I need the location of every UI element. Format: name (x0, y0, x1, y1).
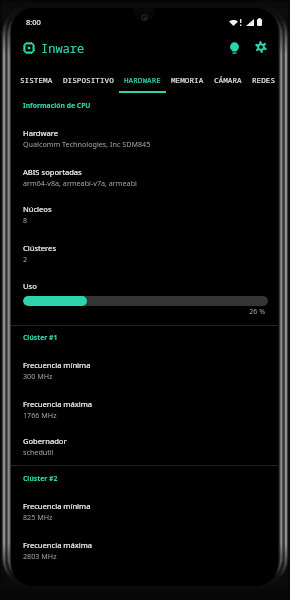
staticText: SISTEMA (20, 75, 53, 85)
staticText: 825 MHz (23, 512, 53, 522)
staticText: MEMORIA (171, 75, 204, 85)
staticText: Frecuencia mínima (23, 501, 91, 511)
staticText: CÁMARA (214, 75, 242, 85)
staticText: Clústeres (23, 243, 57, 253)
staticText: Qualcomm Technologies, Inc SDM845 (23, 139, 151, 149)
staticText: 2803 MHz (23, 551, 57, 561)
staticText: 2 (23, 254, 28, 264)
button[interactable]: Núcleos (23, 204, 266, 225)
staticText: Frecuencia máxima (23, 399, 93, 409)
staticText: ABIS soportadas (23, 167, 82, 177)
button[interactable]: REDES (247, 68, 278, 91)
button[interactable]: Toggle theme (220, 34, 248, 62)
button[interactable]: ABIS soportadas (23, 167, 266, 188)
button[interactable]: Frecuencia mínima (23, 501, 266, 522)
staticText: Uso (23, 281, 37, 291)
staticText: DISPOSITIVO (63, 75, 114, 85)
button[interactable]: Gobernador (23, 436, 266, 457)
staticText: REDES (252, 75, 276, 85)
staticText: 26 % (23, 307, 265, 317)
staticText: Clúster #2 (23, 474, 58, 483)
staticText: 1766 MHz (23, 410, 57, 420)
staticText: Inware (41, 40, 85, 56)
staticText: HARDWARE (124, 75, 161, 85)
staticText: 8 (23, 215, 28, 225)
staticText: 300 MHz (23, 371, 53, 381)
button[interactable]: SISTEMA (15, 68, 58, 91)
button[interactable]: Frecuencia máxima (23, 399, 266, 420)
button[interactable]: DISPOSITIVO (58, 68, 119, 91)
staticText: 8:00 (26, 17, 41, 27)
button[interactable]: HARDWARE (119, 68, 166, 93)
staticText: Clúster #1 (23, 333, 58, 342)
button[interactable]: Frecuencia mínima (23, 360, 266, 381)
button[interactable]: Settings (247, 33, 275, 61)
staticText: schedutil (23, 447, 54, 457)
staticText: Gobernador (23, 436, 67, 446)
button[interactable]: Frecuencia máxima (23, 540, 266, 561)
button[interactable]: Hardware (23, 128, 266, 149)
staticText: Hardware (23, 128, 59, 138)
button[interactable]: MEMORIA (166, 68, 209, 91)
staticText: arm64-v8a, armeabi-v7a, armeabi (23, 178, 137, 188)
button[interactable]: CÁMARA (209, 68, 247, 91)
staticText: Núcleos (23, 204, 52, 214)
button[interactable]: Clústeres (23, 243, 266, 264)
staticText: Frecuencia máxima (23, 540, 93, 550)
staticText: Frecuencia mínima (23, 360, 91, 370)
button[interactable]: Inware (22, 34, 85, 62)
staticText: Información de CPU (23, 101, 91, 110)
